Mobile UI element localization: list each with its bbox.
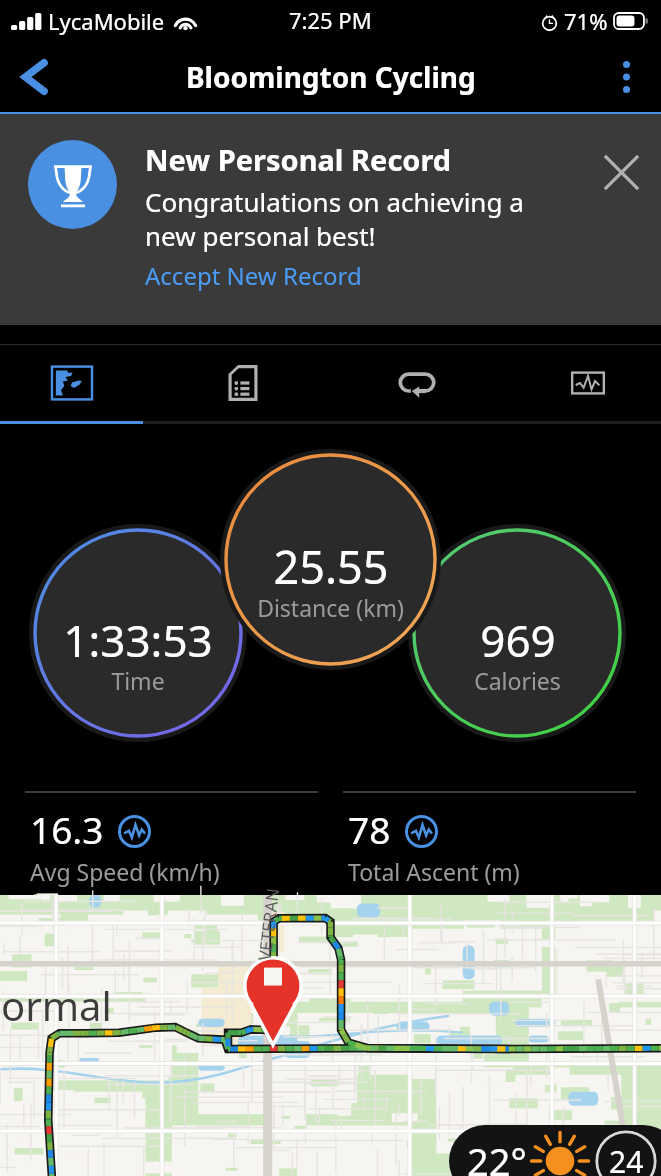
staticText: 24 <box>609 1141 644 1176</box>
staticText: Congratulations on achieving a new perso… <box>145 184 524 253</box>
staticText: Accept New Record <box>145 259 362 292</box>
button[interactable]: Charts <box>516 345 660 421</box>
button[interactable]: More options <box>597 48 655 106</box>
button[interactable]: Map route <box>0 345 144 421</box>
staticText: Time <box>111 665 165 696</box>
staticText: 16.3 <box>30 804 104 854</box>
staticText: Distance (km) <box>257 592 404 623</box>
staticText: Avg Speed (km/h) <box>30 856 220 887</box>
staticText: Total Ascent (m) <box>348 856 520 887</box>
button[interactable]: Details <box>171 345 315 421</box>
staticText: 7:25 PM <box>289 5 372 35</box>
staticText: LycaMobile <box>48 6 165 36</box>
staticText: 969 <box>480 610 556 670</box>
staticText: Calories <box>474 665 561 696</box>
staticText: 71% <box>564 6 608 36</box>
button[interactable]: Dismiss <box>597 148 645 196</box>
button[interactable]: Laps <box>345 345 489 421</box>
button[interactable]: Accept New Record <box>145 259 362 292</box>
staticText: ormal <box>1 978 112 1032</box>
staticText: 25.55 <box>273 536 389 597</box>
staticText: VETERAN <box>253 887 284 962</box>
staticText: Bloomington Cycling <box>186 58 476 96</box>
button[interactable]: Back <box>6 48 64 106</box>
staticText: 78 <box>348 804 391 854</box>
staticText: 22° <box>467 1135 527 1176</box>
staticText: 1:33:53 <box>63 610 213 670</box>
staticText: New Personal Record <box>145 140 452 179</box>
button[interactable]: Weather <box>449 1125 661 1176</box>
